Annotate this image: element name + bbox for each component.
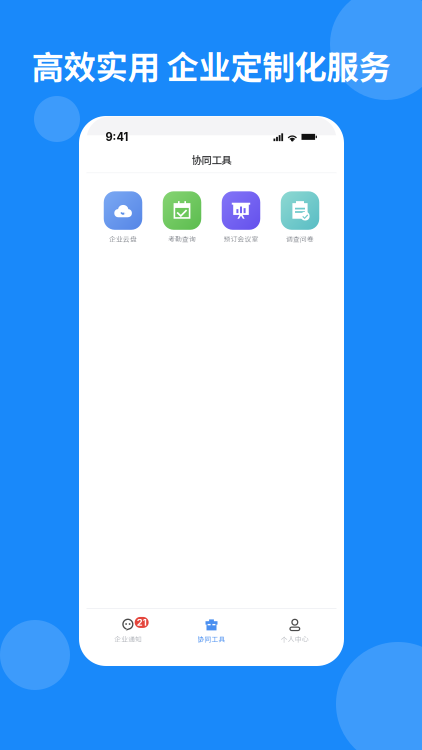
staticText: 高效实用 企业定制化服务 [31, 41, 390, 88]
staticText: 企业通知 [114, 634, 142, 644]
staticText: 考勤查询 [168, 234, 196, 244]
button[interactable]: 考勤查询 [152, 191, 211, 244]
staticText: 调查问卷 [286, 234, 314, 244]
button[interactable]: 21 [86, 616, 170, 646]
button[interactable]: 调查问卷 [270, 191, 329, 244]
staticText: 预订会议室 [223, 234, 258, 244]
staticText: 个人中心 [281, 634, 309, 644]
staticText: 协同工具 [197, 634, 225, 644]
staticText: 9:41 [105, 130, 128, 144]
staticText: 协同工具 [191, 152, 231, 167]
button[interactable]: 预订会议室 [211, 191, 270, 244]
button[interactable]: 企业云盘 [93, 191, 152, 244]
staticText: 21 [137, 617, 147, 628]
button[interactable]: 协同工具 [170, 616, 253, 646]
staticText: 企业云盘 [109, 234, 137, 244]
button[interactable]: 个人中心 [253, 616, 336, 646]
